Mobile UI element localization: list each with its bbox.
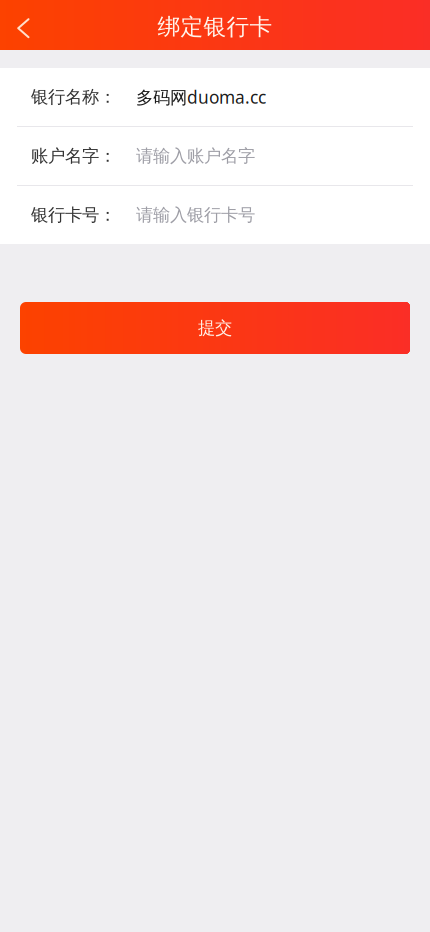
staticText: 银行名称： [31, 86, 116, 108]
button[interactable]: 返回 [0, 0, 48, 50]
staticText: 请输入账户名字 [136, 145, 255, 167]
staticText: 银行卡号： [31, 204, 116, 226]
staticText: 多码网duoma.cc [136, 85, 266, 108]
staticText: 账户名字： [31, 145, 116, 167]
button[interactable]: 银行卡号： [0, 186, 430, 244]
staticText: 绑定银行卡 [157, 13, 272, 41]
staticText: 提交 [198, 317, 232, 339]
button[interactable]: 提交 [20, 302, 410, 354]
button[interactable]: 账户名字： [0, 127, 430, 185]
button[interactable]: 银行名称： [0, 68, 430, 126]
staticText: 请输入银行卡号 [136, 204, 255, 226]
